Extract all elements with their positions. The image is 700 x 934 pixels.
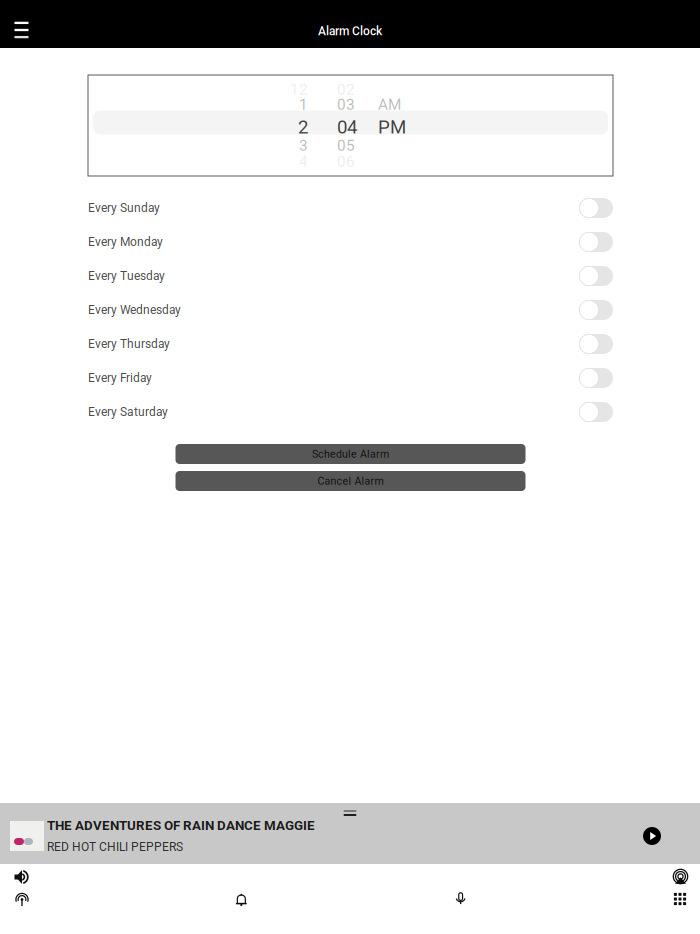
staticText: 03 [337,95,355,113]
button[interactable]: Every Sunday [88,191,613,225]
staticText: 02 [337,80,355,98]
button[interactable]: Every Friday [88,361,613,395]
staticText: 3 [299,136,308,154]
staticText: Every Sunday [88,201,160,215]
button[interactable]: Alarms [224,890,258,908]
button[interactable]: Schedule Alarm [175,444,525,464]
button[interactable]: Apps [663,890,697,908]
staticText: PM [378,116,406,138]
staticText: 05 [337,136,355,154]
staticText: 1 [299,95,308,113]
staticText: Every Tuesday [88,269,165,283]
staticText: 12 [290,80,308,98]
staticText: RED HOT CHILI PEPPERS [47,840,183,854]
button[interactable]: Menu [0,0,43,48]
button[interactable]: Every Wednesday [88,293,613,327]
staticText: Every Saturday [88,405,168,419]
button[interactable]: Every Monday [88,225,613,259]
staticText: Cancel Alarm [317,475,383,487]
button[interactable]: AirPlay [664,867,698,887]
staticText: 04 [337,116,357,138]
staticText: Every Wednesday [88,303,181,317]
staticText: AM [378,95,401,113]
button[interactable]: Play [643,827,661,845]
button[interactable]: Volume [5,867,39,887]
button[interactable]: Every Saturday [88,395,613,429]
button[interactable]: Every Tuesday [88,259,613,293]
staticText: Schedule Alarm [312,448,389,460]
button[interactable]: Every Thursday [88,327,613,361]
staticText: Every Monday [88,235,163,249]
staticText: 06 [337,152,355,170]
button[interactable]: Microphone [444,890,478,908]
staticText: THE ADVENTURES OF RAIN DANCE MAGGIE [47,818,315,833]
staticText: Every Friday [88,371,152,385]
staticText: Every Thursday [88,337,170,351]
staticText: 4 [299,152,308,170]
button[interactable]: Broadcast [5,890,39,908]
staticText: Alarm Clock [318,24,382,38]
staticText: 2 [298,116,308,138]
button[interactable]: Cancel Alarm [175,471,525,491]
